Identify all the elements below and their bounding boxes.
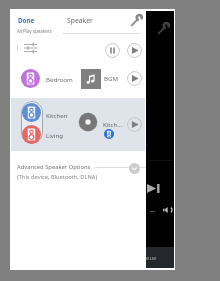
button[interactable]: Tools	[154, 19, 171, 36]
staticText: Bedroom	[46, 75, 73, 83]
staticText: Kitchen	[46, 111, 68, 119]
staticText: BGM	[104, 74, 118, 82]
button[interactable]	[11, 160, 145, 184]
button[interactable]: Play all	[127, 43, 142, 58]
button[interactable]: Volume	[161, 205, 173, 216]
button[interactable]: BGM source	[81, 69, 101, 89]
button[interactable]: Settings	[128, 12, 145, 29]
staticText: (This device, Bluetooth, DLNA)	[17, 173, 98, 181]
staticText: AirPlay speakers	[17, 28, 52, 34]
staticText: Advanced Speaker Options	[17, 163, 91, 171]
staticText: Kitch...	[103, 120, 123, 128]
staticText: Speaker	[67, 16, 93, 25]
staticText: eue	[146, 254, 157, 262]
button[interactable]: Next track	[146, 182, 162, 194]
staticText: Living	[46, 131, 63, 139]
button[interactable]: Play Kitchen	[127, 117, 142, 132]
button[interactable]: Done	[18, 16, 35, 24]
staticText: Done	[18, 16, 35, 24]
button[interactable]	[11, 98, 145, 151]
button[interactable]: Play Bedroom	[127, 71, 142, 86]
button[interactable]: eue	[146, 247, 174, 268]
button[interactable]: Equalizer	[22, 40, 39, 56]
button[interactable]: Pause	[105, 43, 120, 58]
button[interactable]: Expand advanced options	[129, 163, 140, 174]
